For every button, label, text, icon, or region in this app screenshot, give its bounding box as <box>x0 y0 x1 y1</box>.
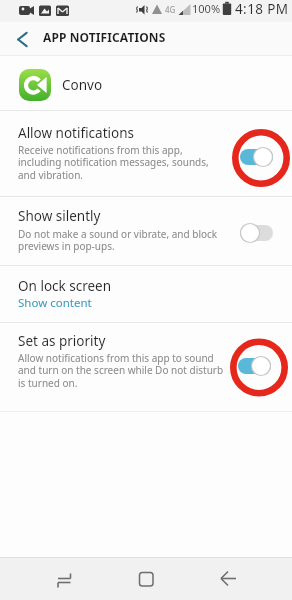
staticText: Receive notifications from this app, inc… <box>18 143 209 182</box>
button[interactable] <box>124 557 168 600</box>
button[interactable]: Set as priority <box>0 323 292 411</box>
staticText: On lock screen <box>18 277 112 295</box>
staticText: 4G <box>165 4 176 15</box>
button[interactable] <box>236 354 274 378</box>
staticText: Allow notifications from this app to sou… <box>18 351 224 390</box>
button[interactable]: Convo <box>0 56 292 110</box>
staticText: 4:18 PM <box>235 0 289 18</box>
staticText: APP NOTIFICATIONS <box>43 29 166 45</box>
staticText: Set as priority <box>18 332 106 350</box>
button[interactable]: Allow notifications <box>0 111 292 196</box>
button[interactable]: Show silently <box>0 197 292 265</box>
staticText: Do not make a sound or vibrate, and bloc… <box>18 227 218 253</box>
button[interactable] <box>238 221 276 245</box>
button[interactable] <box>42 557 86 600</box>
staticText: Convo <box>62 76 103 94</box>
staticText: Show silently <box>18 207 101 225</box>
button[interactable]: On lock screen <box>0 266 292 322</box>
button[interactable] <box>238 145 276 169</box>
button[interactable] <box>206 557 250 600</box>
staticText: 100% <box>192 1 221 16</box>
staticText: Allow notifications <box>18 124 134 142</box>
staticText: Show content <box>18 295 92 311</box>
button[interactable] <box>8 25 36 53</box>
